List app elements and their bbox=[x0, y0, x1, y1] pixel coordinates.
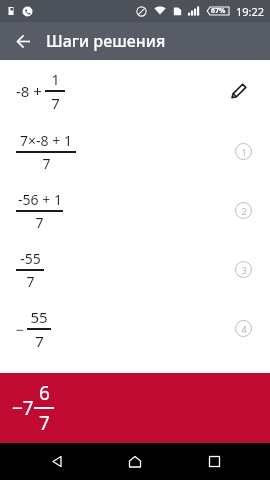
staticText: -55 bbox=[20, 249, 41, 268]
button[interactable]: − bbox=[0, 299, 270, 358]
staticText: 7×-8 + 1 bbox=[20, 131, 72, 150]
button[interactable]: −7 bbox=[0, 373, 270, 443]
staticText: 3 bbox=[241, 264, 247, 276]
staticText: 2 bbox=[241, 205, 247, 217]
button[interactable]: Recents bbox=[192, 443, 236, 480]
button[interactable]: -8 + bbox=[0, 60, 270, 122]
staticText: 1 bbox=[241, 146, 247, 158]
staticText: -8 + bbox=[16, 81, 42, 101]
button[interactable]: Back bbox=[35, 443, 79, 480]
staticText: 7 bbox=[51, 93, 60, 113]
button[interactable]: -55 bbox=[0, 240, 270, 299]
staticText: 7 bbox=[26, 272, 35, 291]
staticText: -56 + 1 bbox=[18, 190, 62, 209]
staticText: 6 bbox=[39, 380, 50, 406]
button[interactable]: Back bbox=[8, 26, 38, 56]
button[interactable]: -56 + 1 bbox=[0, 181, 270, 240]
staticText: 7 bbox=[35, 213, 44, 232]
staticText: −7 bbox=[12, 395, 34, 421]
staticText: Шаги решения bbox=[46, 30, 166, 52]
staticText: 4 bbox=[241, 323, 247, 335]
staticText: 7 bbox=[35, 331, 44, 351]
button[interactable]: 7×-8 + 1 bbox=[0, 122, 270, 181]
staticText: 7 bbox=[39, 410, 50, 436]
staticText: − bbox=[16, 320, 25, 339]
button[interactable]: Home bbox=[113, 443, 157, 480]
staticText: 7 bbox=[42, 154, 51, 173]
staticText: 19:22 bbox=[236, 4, 265, 19]
button[interactable]: Edit bbox=[222, 74, 256, 108]
staticText: 67% bbox=[211, 6, 226, 16]
staticText: 55 bbox=[30, 307, 48, 327]
staticText: 1 bbox=[51, 69, 60, 89]
